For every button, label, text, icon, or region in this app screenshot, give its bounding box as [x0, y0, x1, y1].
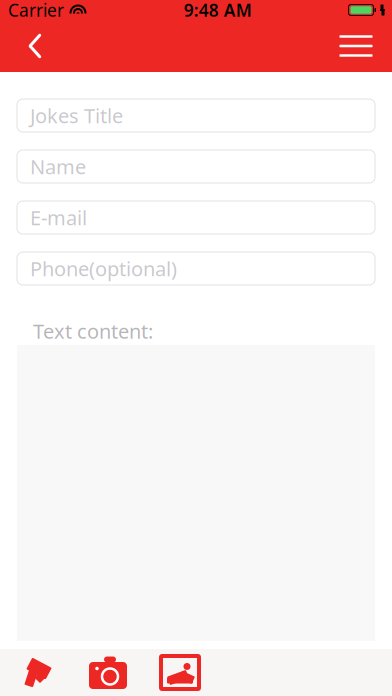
staticText: Name	[30, 153, 86, 180]
button[interactable]: Send	[0, 649, 72, 696]
button[interactable]: Camera	[72, 649, 144, 696]
staticText: 9:48 AM	[184, 0, 252, 21]
staticText: Text content:	[33, 318, 153, 344]
staticText: Carrier	[8, 0, 64, 21]
button[interactable]: Photo Library	[144, 649, 216, 696]
staticText: E-mail	[30, 204, 87, 231]
button[interactable]: Menu	[328, 20, 384, 72]
button[interactable]: Back	[8, 20, 62, 72]
staticText: Jokes Title	[30, 102, 123, 129]
staticText: Phone(optional)	[30, 255, 177, 282]
